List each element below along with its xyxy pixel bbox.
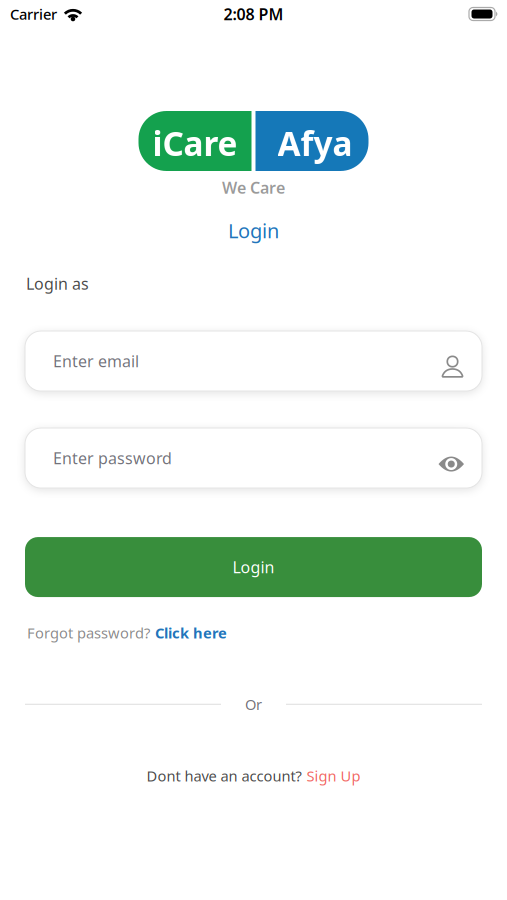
staticText: Sign Up bbox=[306, 766, 360, 785]
staticText: Click here bbox=[155, 623, 227, 643]
staticText: Login bbox=[232, 556, 274, 578]
staticText: Enter email bbox=[53, 350, 139, 372]
button[interactable]: Enter email bbox=[25, 331, 482, 391]
staticText: Afya bbox=[277, 121, 352, 165]
staticText: Login as bbox=[26, 273, 89, 294]
staticText: Forgot password? bbox=[27, 623, 150, 643]
button[interactable]: Sign Up bbox=[306, 766, 360, 785]
staticText: Dont have an account? bbox=[146, 766, 301, 785]
staticText: Enter password bbox=[53, 447, 172, 469]
button[interactable]: Enter password bbox=[25, 428, 482, 488]
staticText: Login bbox=[228, 217, 279, 244]
staticText: iCare bbox=[152, 121, 237, 165]
button[interactable]: Click here bbox=[155, 623, 227, 643]
staticText: Carrier bbox=[10, 4, 57, 24]
button[interactable]: Show password bbox=[438, 449, 464, 467]
staticText: 2:08 PM bbox=[223, 3, 283, 25]
staticText: Or bbox=[245, 694, 262, 714]
button[interactable]: Login bbox=[25, 537, 482, 597]
staticText: We Care bbox=[222, 177, 285, 198]
